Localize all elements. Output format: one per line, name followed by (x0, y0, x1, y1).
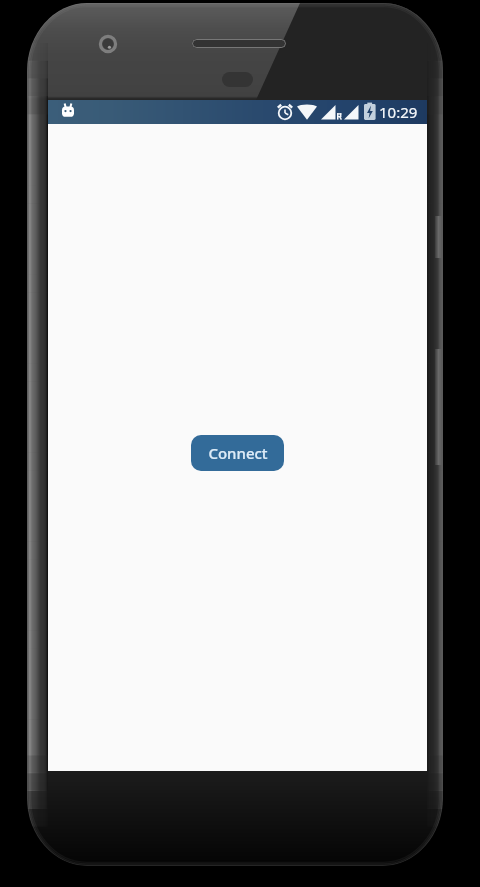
staticText: Connect (208, 443, 268, 463)
other: Power button (435, 216, 442, 258)
staticText: 10:29 (379, 102, 418, 122)
other: Volume buttons (435, 349, 442, 465)
button[interactable]: Connect (191, 435, 284, 471)
